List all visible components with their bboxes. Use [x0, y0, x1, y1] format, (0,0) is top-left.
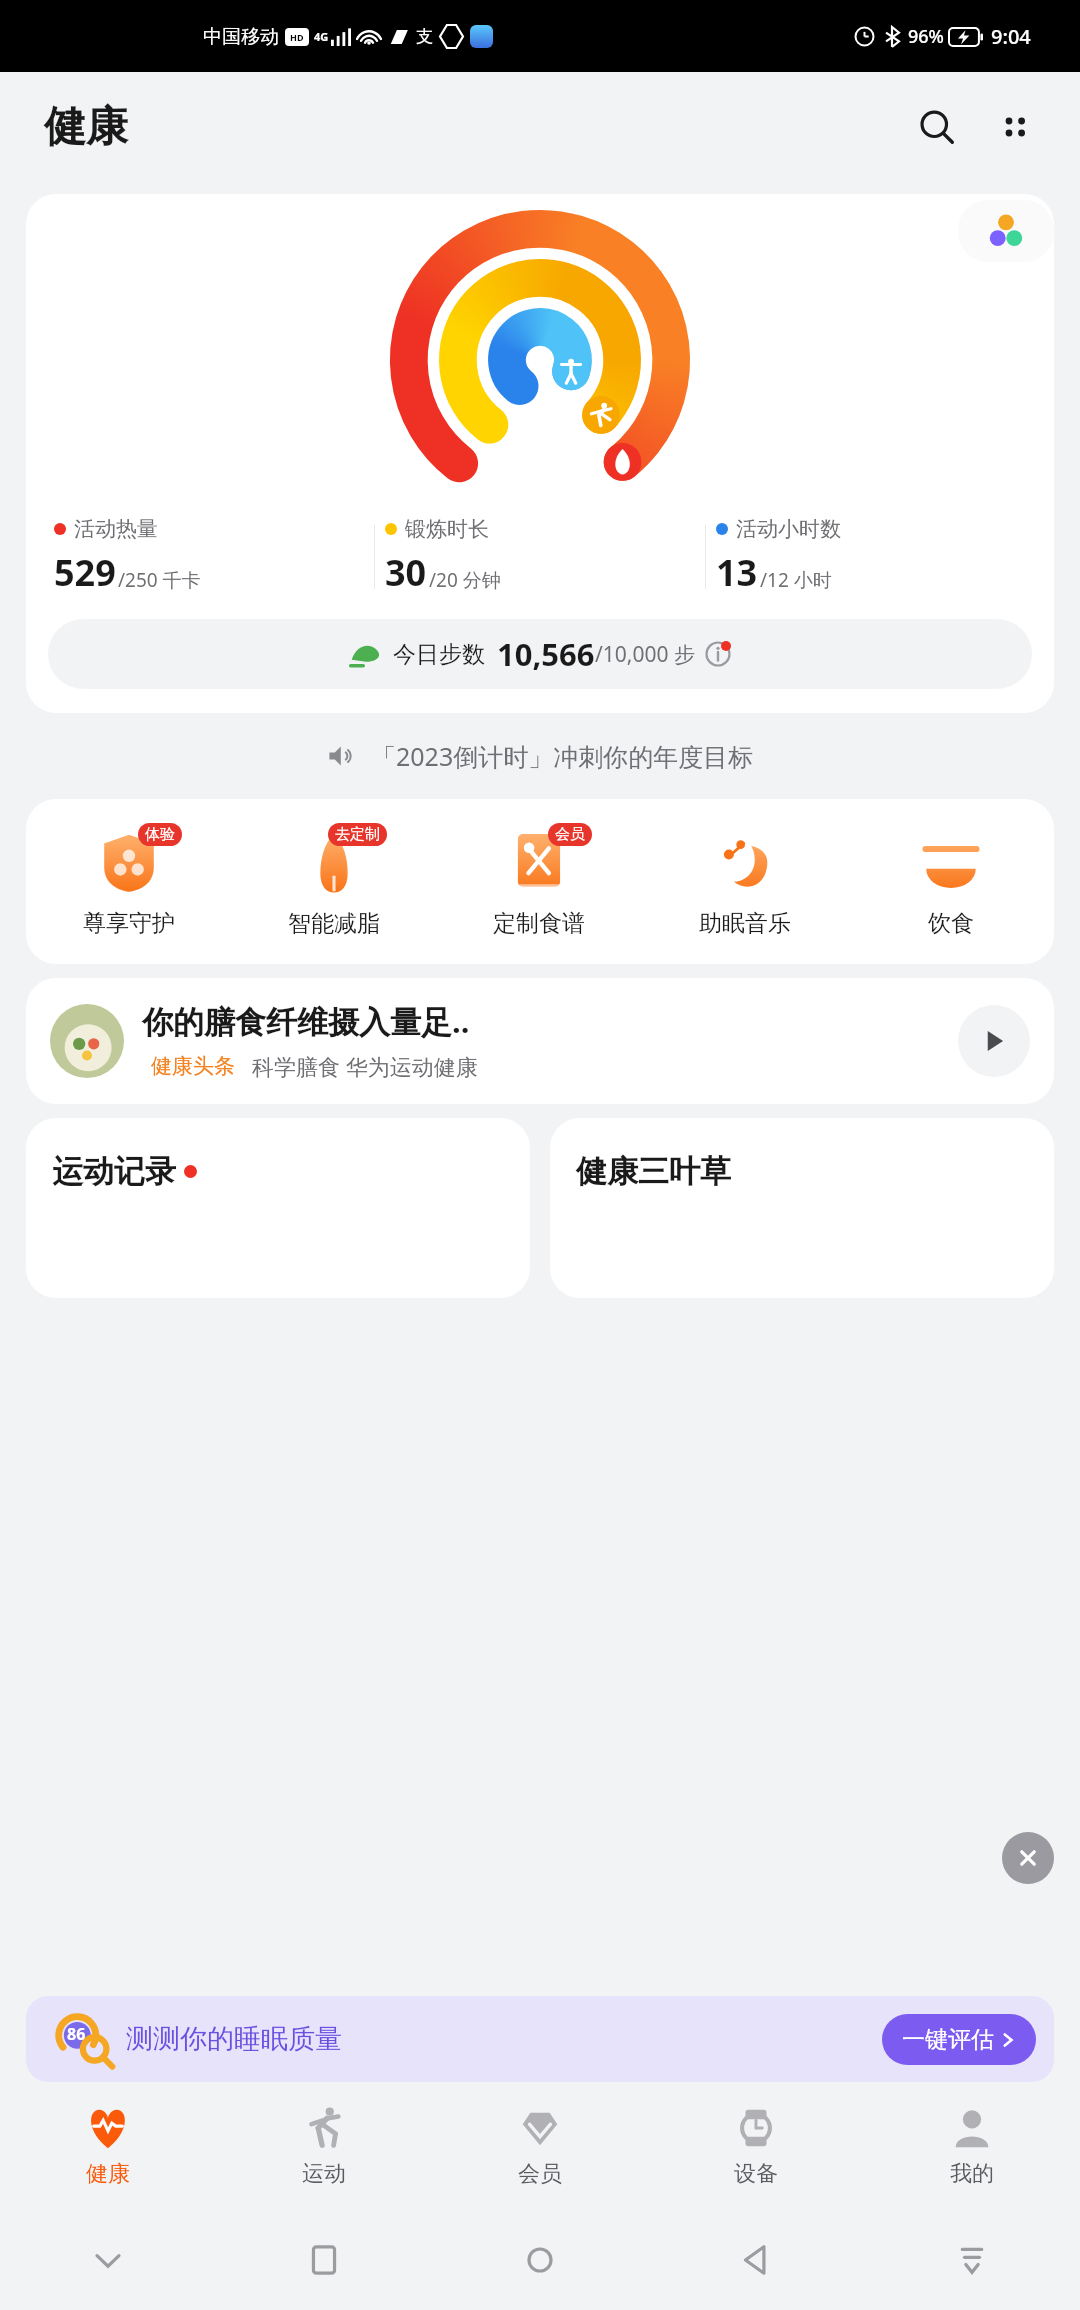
button[interactable]: 86 — [26, 1996, 1054, 2082]
staticText: 4G — [314, 29, 329, 44]
staticText: 智能减脂 — [288, 909, 380, 938]
button[interactable]: 饮食 — [848, 825, 1054, 938]
staticText: 健康头条 — [151, 1053, 235, 1079]
staticText: 「2023倒计时」冲刺你的年度目标 — [371, 739, 754, 773]
button[interactable]: 我的 — [864, 2082, 1080, 2210]
staticText: 测测你的睡眠质量 — [126, 2022, 342, 2056]
staticText: 86 — [67, 2023, 86, 2045]
staticText: /10,000 步 — [595, 640, 695, 669]
button[interactable]: Play — [958, 1005, 1030, 1077]
staticText: 会员 — [555, 825, 585, 844]
staticText: 一键评估 — [902, 2025, 994, 2054]
button[interactable]: 「2023倒计时」冲刺你的年度目标 — [0, 727, 1080, 785]
staticText: 健康 — [44, 101, 128, 154]
button[interactable]: Recents — [216, 2210, 432, 2310]
button[interactable]: More options — [984, 96, 1046, 158]
staticText: 运动记录 — [52, 1152, 176, 1191]
staticText: /12 小时 — [760, 567, 832, 593]
staticText: 会员 — [518, 2160, 562, 2188]
button[interactable]: 健康三叶草 — [550, 1118, 1054, 1298]
button[interactable]: 健康 — [0, 2082, 216, 2210]
button[interactable]: Download — [864, 2210, 1080, 2310]
staticText: 你的膳食纤维摄入量足.. — [142, 1000, 470, 1042]
staticText: 健康三叶草 — [576, 1152, 731, 1191]
button[interactable]: 今日步数 — [48, 619, 1032, 689]
button[interactable]: Hide — [0, 2210, 216, 2310]
button[interactable]: 活动热量 — [26, 194, 1054, 713]
staticText: /250 千卡 — [118, 567, 201, 593]
staticText: 运动 — [302, 2160, 346, 2188]
staticText: HD — [290, 31, 304, 43]
button[interactable]: 锻炼时长 — [375, 516, 705, 597]
button[interactable]: 活动小时数 — [706, 516, 1036, 597]
button[interactable]: Close — [1002, 1832, 1054, 1884]
staticText: 中国移动 — [203, 25, 279, 49]
staticText: 13 — [716, 548, 758, 597]
button[interactable]: 一键评估 — [882, 2014, 1036, 2065]
staticText: 锻炼时长 — [405, 516, 489, 542]
staticText: 今日步数 — [393, 640, 485, 669]
staticText: 活动小时数 — [736, 516, 841, 542]
staticText: 定制食谱 — [493, 909, 585, 938]
button[interactable]: 运动 — [216, 2082, 432, 2210]
button[interactable]: 会员 — [432, 2082, 648, 2210]
staticText: 饮食 — [928, 909, 974, 938]
button[interactable]: 你的膳食纤维摄入量足.. — [26, 978, 1054, 1104]
button[interactable]: 设备 — [648, 2082, 864, 2210]
button[interactable]: Search — [906, 96, 968, 158]
button[interactable]: Huawei Share — [958, 200, 1054, 262]
staticText: 科学膳食 华为运动健康 — [252, 1051, 478, 1081]
button[interactable]: 活动热量 — [44, 516, 374, 597]
button[interactable]: 运动记录 — [26, 1118, 530, 1298]
button[interactable]: 会员 — [436, 825, 642, 938]
button[interactable]: 去定制 — [231, 825, 436, 938]
button[interactable]: 体验 — [26, 825, 231, 938]
staticText: 设备 — [734, 2160, 778, 2188]
staticText: 健康 — [86, 2160, 130, 2188]
staticText: 支 — [416, 26, 433, 47]
staticText: 去定制 — [335, 825, 380, 844]
staticText: /20 分钟 — [429, 567, 501, 593]
staticText: 10,566 — [497, 633, 595, 675]
staticText: 尊享守护 — [83, 909, 175, 938]
staticText: 我的 — [950, 2160, 994, 2188]
staticText: 30 — [385, 548, 427, 597]
button[interactable]: Home — [432, 2210, 648, 2310]
staticText: 助眠音乐 — [699, 909, 791, 938]
staticText: 体验 — [145, 825, 175, 844]
staticText: 9:04 — [991, 23, 1031, 50]
button[interactable]: 助眠音乐 — [642, 825, 848, 938]
button[interactable]: Back — [648, 2210, 864, 2310]
staticText: 529 — [54, 548, 116, 597]
staticText: 96% — [908, 24, 944, 49]
staticText: 活动热量 — [74, 516, 158, 542]
